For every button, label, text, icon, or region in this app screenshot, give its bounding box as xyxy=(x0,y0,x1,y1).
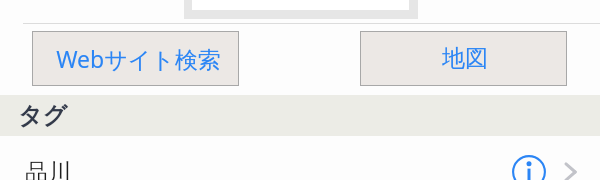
staticText: 品川 xyxy=(25,158,71,180)
staticText: 地図 xyxy=(442,44,488,73)
other: Open xyxy=(555,157,585,180)
staticText: タグ xyxy=(18,101,68,131)
button[interactable]: Info xyxy=(507,150,551,180)
staticText: Webサイト検索 xyxy=(56,43,221,74)
button[interactable]: Webサイト検索 xyxy=(32,31,239,86)
button[interactable]: 地図 xyxy=(360,31,567,86)
button[interactable]: 品川 xyxy=(0,148,600,180)
